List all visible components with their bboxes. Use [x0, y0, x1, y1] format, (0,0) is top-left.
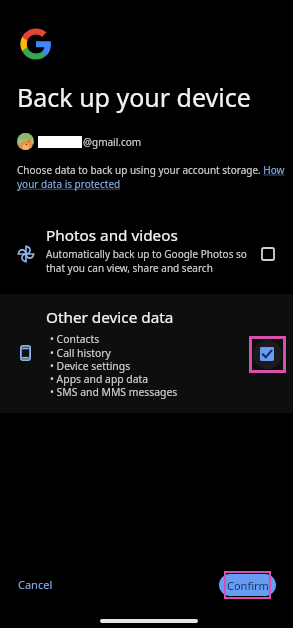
button[interactable]: Other device data	[0, 294, 293, 413]
button[interactable]: Cancel	[12, 572, 59, 597]
button[interactable]: Photos and videos	[0, 216, 293, 294]
staticText: • Contacts • Call history • Device setti…	[50, 332, 178, 399]
staticText: Choose data to back up using your accoun…	[17, 163, 293, 191]
staticText: Confirm	[227, 578, 269, 593]
staticText: Back up your device	[17, 80, 251, 114]
button[interactable]: @gmail.com	[0, 133, 293, 150]
staticText: Other device data	[46, 307, 174, 328]
button[interactable]: Photos and videos checkbox, unchecked	[256, 242, 280, 266]
staticText: @gmail.com	[83, 135, 142, 149]
staticText: Automatically back up to Google Photos s…	[46, 247, 251, 275]
staticText: Cancel	[18, 577, 53, 592]
button[interactable]: Confirm	[219, 574, 276, 596]
staticText: Photos and videos	[46, 225, 178, 246]
button[interactable]: Other device data checkbox, checked	[248, 335, 286, 373]
